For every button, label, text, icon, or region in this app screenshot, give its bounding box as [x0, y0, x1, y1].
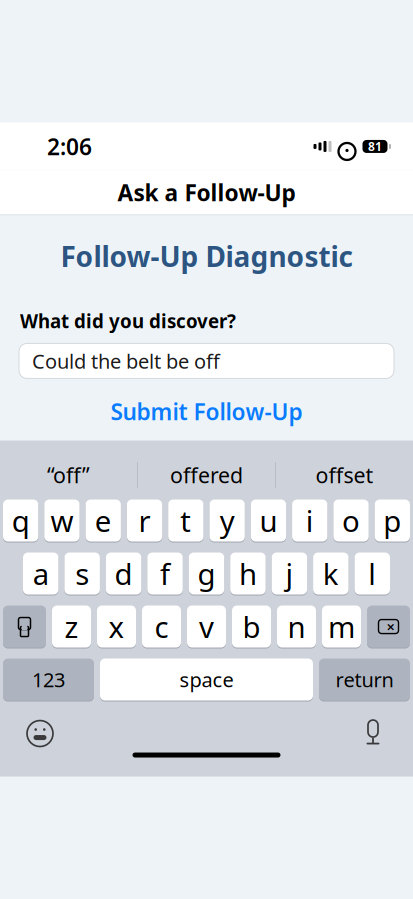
staticText: t — [180, 501, 191, 540]
button[interactable]: h — [230, 552, 266, 594]
button[interactable]: l — [355, 552, 390, 594]
staticText: 2:06 — [47, 131, 92, 161]
button[interactable]: w — [44, 499, 80, 541]
button[interactable]: y — [209, 499, 245, 541]
staticText: k — [323, 554, 339, 593]
button[interactable]: j — [272, 552, 307, 594]
button[interactable]: n — [277, 605, 316, 647]
staticText: y — [220, 501, 235, 540]
staticText: Could the belt be off — [32, 348, 220, 374]
staticText: return — [335, 666, 393, 693]
staticText: f — [160, 554, 170, 593]
button[interactable]: t — [168, 499, 203, 541]
staticText: z — [64, 607, 78, 646]
staticText: u — [259, 501, 277, 540]
staticText: h — [239, 554, 257, 593]
staticText: What did you discover? — [20, 309, 236, 333]
button[interactable]: i — [292, 499, 327, 541]
staticText: × — [386, 617, 394, 636]
staticText: a — [33, 554, 49, 593]
staticText: 81 — [368, 138, 382, 154]
staticText: s — [75, 554, 89, 593]
button[interactable]: r — [127, 499, 162, 541]
button[interactable]: return — [319, 658, 410, 700]
button[interactable]: b — [232, 605, 271, 647]
button[interactable]: o — [333, 499, 369, 541]
staticText: c — [154, 607, 168, 646]
button[interactable]: k — [313, 552, 348, 594]
button[interactable]: u — [251, 499, 286, 541]
staticText: v — [199, 607, 214, 646]
button[interactable]: offset — [276, 454, 413, 496]
staticText: g — [197, 554, 215, 593]
button[interactable]: p — [375, 499, 410, 541]
button[interactable]: g — [189, 552, 224, 594]
staticText: offset — [315, 461, 373, 489]
button[interactable]: q — [3, 499, 38, 541]
button[interactable]: Shift — [3, 605, 46, 647]
button[interactable]: “off” — [0, 454, 137, 496]
button[interactable]: f — [147, 552, 183, 594]
button[interactable]: Emoji keyboard — [20, 713, 60, 753]
staticText: Submit Follow-Up — [110, 396, 302, 426]
button[interactable]: 123 — [3, 658, 94, 700]
staticText: Follow-Up Diagnostic — [60, 237, 352, 275]
staticText: o — [342, 501, 360, 540]
button[interactable]: Delete — [367, 605, 410, 647]
staticText: l — [368, 554, 376, 593]
staticText: n — [287, 607, 305, 646]
staticText: p — [383, 501, 401, 540]
staticText: q — [12, 501, 30, 540]
button[interactable]: s — [64, 552, 100, 594]
staticText: offered — [170, 461, 243, 489]
staticText: j — [285, 554, 293, 593]
button[interactable]: a — [23, 552, 58, 594]
staticText: Ask a Follow-Up — [117, 177, 295, 207]
button[interactable]: offered — [138, 454, 275, 496]
staticText: m — [328, 607, 355, 646]
button[interactable]: m — [322, 605, 361, 647]
button[interactable]: space — [100, 658, 313, 700]
staticText: e — [95, 501, 112, 540]
button[interactable]: d — [106, 552, 141, 594]
staticText: space — [179, 666, 233, 693]
button[interactable]: c — [142, 605, 181, 647]
staticText: x — [108, 607, 124, 646]
button[interactable]: x — [97, 605, 136, 647]
button[interactable]: v — [187, 605, 226, 647]
staticText: d — [115, 554, 133, 593]
staticText: r — [138, 501, 150, 540]
staticText: w — [50, 501, 73, 540]
staticText: 123 — [32, 666, 65, 693]
button[interactable]: Dictation — [353, 713, 393, 753]
staticText: i — [306, 501, 314, 540]
button[interactable]: z — [52, 605, 91, 647]
staticText: b — [242, 607, 260, 646]
button[interactable]: Submit Follow-Up — [0, 390, 413, 432]
button[interactable]: e — [86, 499, 121, 541]
staticText: “off” — [47, 461, 90, 489]
